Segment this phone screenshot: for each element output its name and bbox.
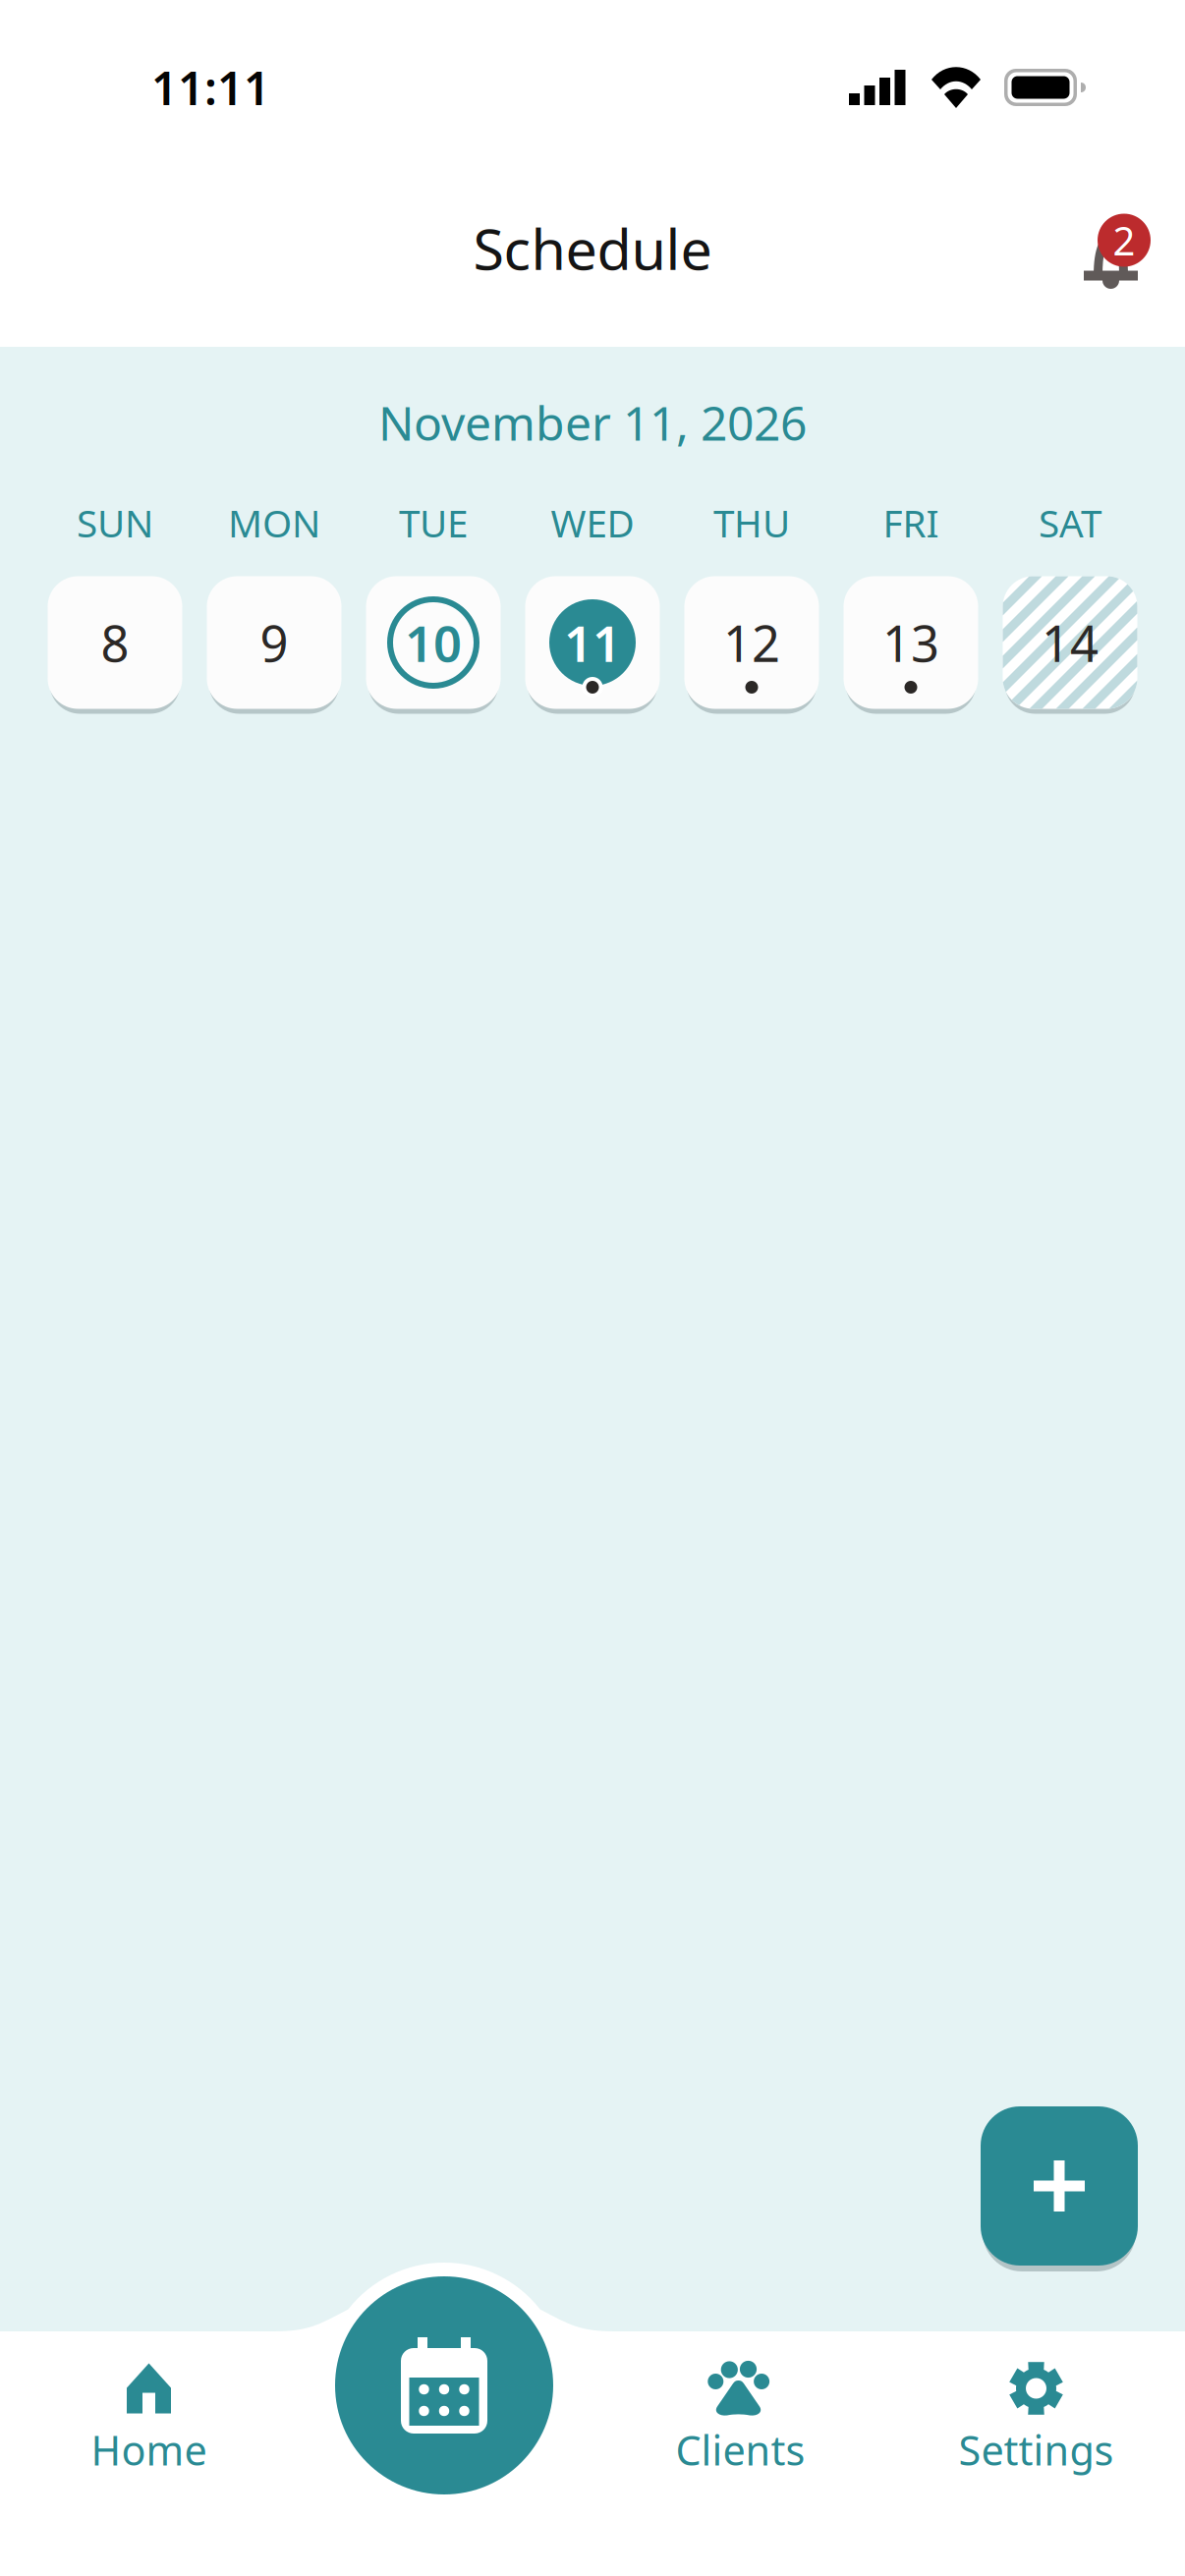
staticText: Clients [676, 2423, 805, 2477]
staticText: SAT [1039, 497, 1101, 548]
button[interactable]: Schedule [335, 2276, 553, 2494]
staticText: THU [713, 497, 790, 548]
staticText: Schedule [473, 211, 712, 285]
button[interactable]: Settings [888, 2331, 1184, 2576]
staticText: 10 [405, 610, 462, 676]
button[interactable]: Clients [592, 2331, 888, 2576]
staticText: Settings [959, 2423, 1114, 2477]
staticText: 12 [723, 610, 780, 676]
staticText: Home [91, 2423, 207, 2477]
staticText: 8 [101, 610, 129, 676]
button[interactable]: TUE [366, 503, 501, 712]
staticText: 11 [564, 610, 621, 676]
staticText: FRI [883, 497, 939, 548]
staticText: TUE [399, 497, 468, 548]
button[interactable]: SUN [48, 503, 182, 712]
staticText: SUN [77, 497, 153, 548]
button[interactable]: SAT [1003, 503, 1137, 712]
button[interactable]: WED [525, 503, 660, 712]
staticText: 2 [1113, 214, 1135, 266]
button[interactable]: MON [207, 503, 341, 712]
staticText: 14 [1042, 610, 1099, 676]
staticText: 9 [260, 610, 288, 676]
staticText: 11:11 [151, 57, 270, 118]
staticText: November 11, 2026 [378, 391, 807, 454]
button[interactable]: Notifications [1084, 189, 1151, 307]
button[interactable]: Home [1, 2331, 297, 2576]
button[interactable]: Add appointment [981, 2102, 1138, 2269]
staticText: 13 [882, 610, 939, 676]
button[interactable]: THU [684, 503, 819, 712]
staticText: WED [551, 497, 634, 548]
staticText: MON [228, 497, 320, 548]
button[interactable]: FRI [844, 503, 978, 712]
